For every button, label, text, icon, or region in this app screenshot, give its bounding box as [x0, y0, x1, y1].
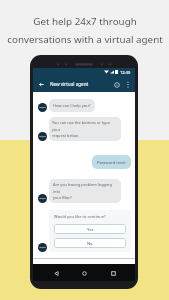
button[interactable]: Help — [111, 79, 122, 90]
staticText: Would you like to continue? — [54, 214, 106, 219]
button[interactable]: No — [54, 238, 126, 248]
staticText: Yes — [87, 227, 94, 232]
button[interactable]: Back — [36, 79, 47, 90]
staticText: Password reset — [97, 160, 126, 165]
button[interactable]: Yes — [54, 224, 126, 234]
button[interactable]: Back — [50, 267, 62, 279]
staticText: Get help 24x7 through — [33, 15, 137, 28]
button[interactable]: More options — [122, 79, 133, 90]
staticText: Are you having problem logging into your… — [53, 182, 117, 200]
staticText: You can use the buttons or type your req… — [52, 120, 118, 138]
staticText: conversations with a virtual agent — [7, 33, 163, 46]
staticText: 12:30 — [120, 70, 131, 75]
staticText: New virtual agent — [50, 81, 89, 87]
staticText: No — [87, 241, 93, 246]
staticText: How can I help you? — [53, 103, 91, 108]
button[interactable]: Home — [78, 267, 90, 279]
button[interactable]: Recents — [107, 267, 119, 279]
